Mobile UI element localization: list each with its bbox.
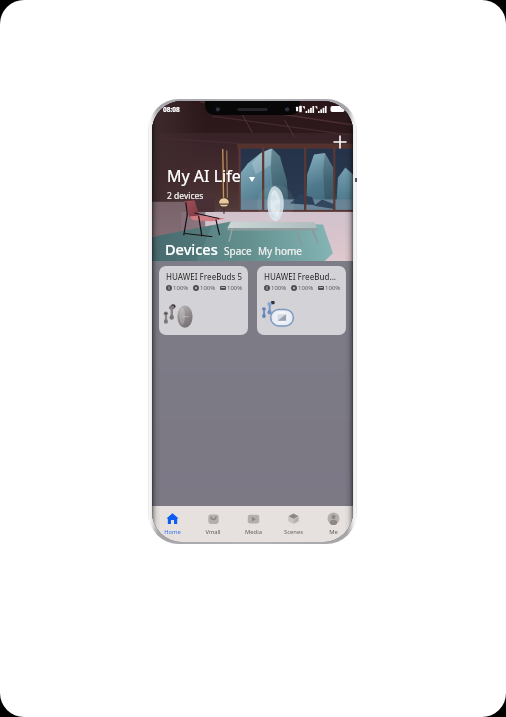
staticText: Media	[245, 528, 262, 536]
button[interactable]: Scenes	[273, 508, 313, 540]
staticText: 2 devices	[167, 190, 204, 202]
button[interactable]: Media	[233, 508, 273, 540]
button[interactable]: Space	[224, 244, 252, 258]
staticText: Devices	[165, 239, 218, 259]
staticText: My AI Life	[167, 165, 241, 187]
staticText: Home	[164, 528, 181, 536]
staticText: 100%	[173, 284, 189, 292]
staticText: 100%	[325, 284, 341, 292]
button[interactable]: Me	[313, 508, 353, 540]
button[interactable]: HUAWEI FreeBuds 5	[159, 266, 248, 335]
button[interactable]: Home	[152, 508, 193, 540]
staticText: My home	[258, 244, 302, 258]
staticText: HUAWEI FreeBud...	[264, 271, 336, 282]
button[interactable]: Add device	[332, 134, 348, 150]
staticText: 100%	[298, 284, 314, 292]
staticText: Vmall	[205, 528, 221, 536]
staticText: 100%	[271, 284, 287, 292]
staticText: 08:08	[163, 105, 180, 114]
staticText: Scenes	[284, 528, 303, 536]
staticText: Space	[224, 244, 252, 258]
staticText: HUAWEI FreeBuds 5	[166, 271, 243, 282]
staticText: Me	[329, 528, 338, 536]
staticText: 100%	[200, 284, 216, 292]
button[interactable]: HUAWEI FreeBud...	[257, 266, 346, 335]
staticText: 100%	[227, 284, 243, 292]
button[interactable]: Vmall	[193, 508, 233, 540]
button[interactable]: My home	[258, 244, 302, 258]
button[interactable]: Devices	[165, 239, 218, 259]
